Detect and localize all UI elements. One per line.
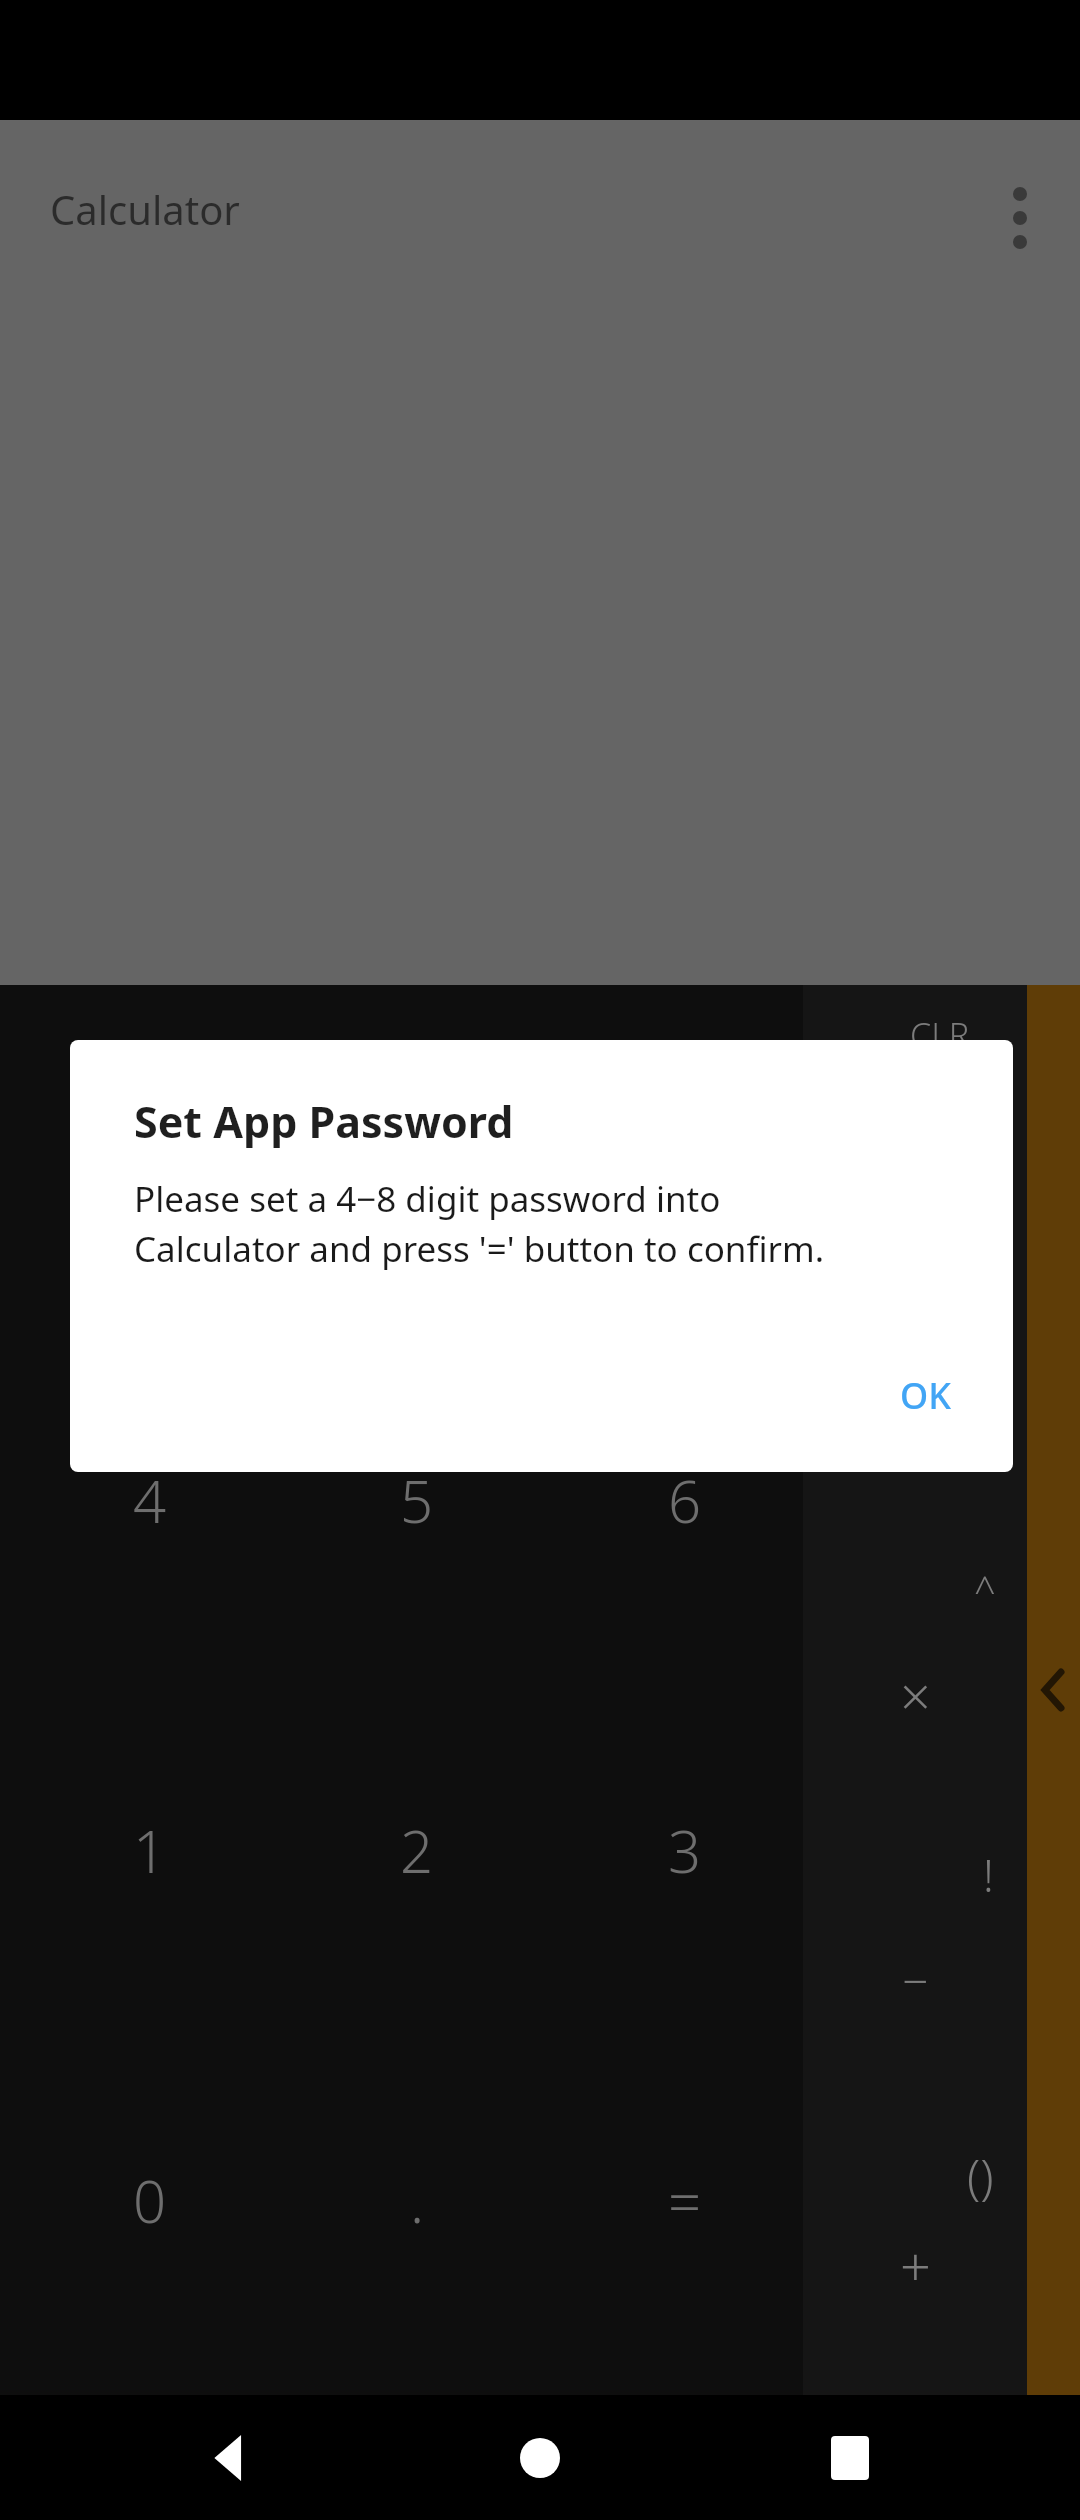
staticText: = <box>668 2161 702 2240</box>
button[interactable]: . <box>357 2150 477 2250</box>
button[interactable]: Open drawer <box>1028 1660 1078 1720</box>
staticText: CLR <box>910 1012 970 1058</box>
button[interactable]: Calculator <box>50 182 240 236</box>
button[interactable]: ^ <box>940 1540 1030 1640</box>
staticText: 1 <box>133 1811 167 1890</box>
staticText: 6 <box>668 1461 702 1540</box>
staticText: 4 <box>133 1461 167 1540</box>
button[interactable]: OK <box>868 1355 983 1436</box>
staticText: Set App Password <box>134 1092 514 1151</box>
staticText: () <box>967 2143 994 2208</box>
staticText: OK <box>900 1371 951 1420</box>
button[interactable]: 1 <box>90 1800 210 1900</box>
button[interactable]: − <box>870 1930 960 2030</box>
staticText: 0 <box>133 2161 167 2240</box>
button[interactable]: Back <box>175 2403 285 2513</box>
staticText: 3 <box>668 1811 702 1890</box>
staticText: 2 <box>400 1811 434 1890</box>
button[interactable]: 6 <box>625 1450 745 1550</box>
button[interactable]: () <box>935 2125 1025 2225</box>
button[interactable]: Home <box>485 2403 595 2513</box>
button[interactable]: 3 <box>625 1800 745 1900</box>
staticText: + <box>900 2228 931 2302</box>
staticText: − <box>902 1949 929 2012</box>
staticText: 5 <box>400 1461 434 1540</box>
button[interactable]: + <box>870 2215 960 2315</box>
staticText: Please set a 4−8 digit password into Cal… <box>134 1175 825 1272</box>
button[interactable]: 2 <box>357 1800 477 1900</box>
button[interactable]: Recents <box>795 2403 905 2513</box>
button[interactable]: 0 <box>90 2150 210 2250</box>
staticText: Calculator <box>50 182 240 236</box>
button[interactable]: ! <box>943 1825 1033 1925</box>
staticText: × <box>900 1658 931 1732</box>
button[interactable]: = <box>625 2150 745 2250</box>
button[interactable]: 5 <box>357 1450 477 1550</box>
staticText: ^ <box>974 1564 996 1616</box>
staticText: . <box>410 2161 425 2240</box>
button[interactable]: CLR <box>895 985 985 1085</box>
button[interactable]: More options <box>972 170 1068 266</box>
staticText: ! <box>983 1845 994 1905</box>
button[interactable]: 4 <box>90 1450 210 1550</box>
button[interactable]: × <box>870 1645 960 1745</box>
